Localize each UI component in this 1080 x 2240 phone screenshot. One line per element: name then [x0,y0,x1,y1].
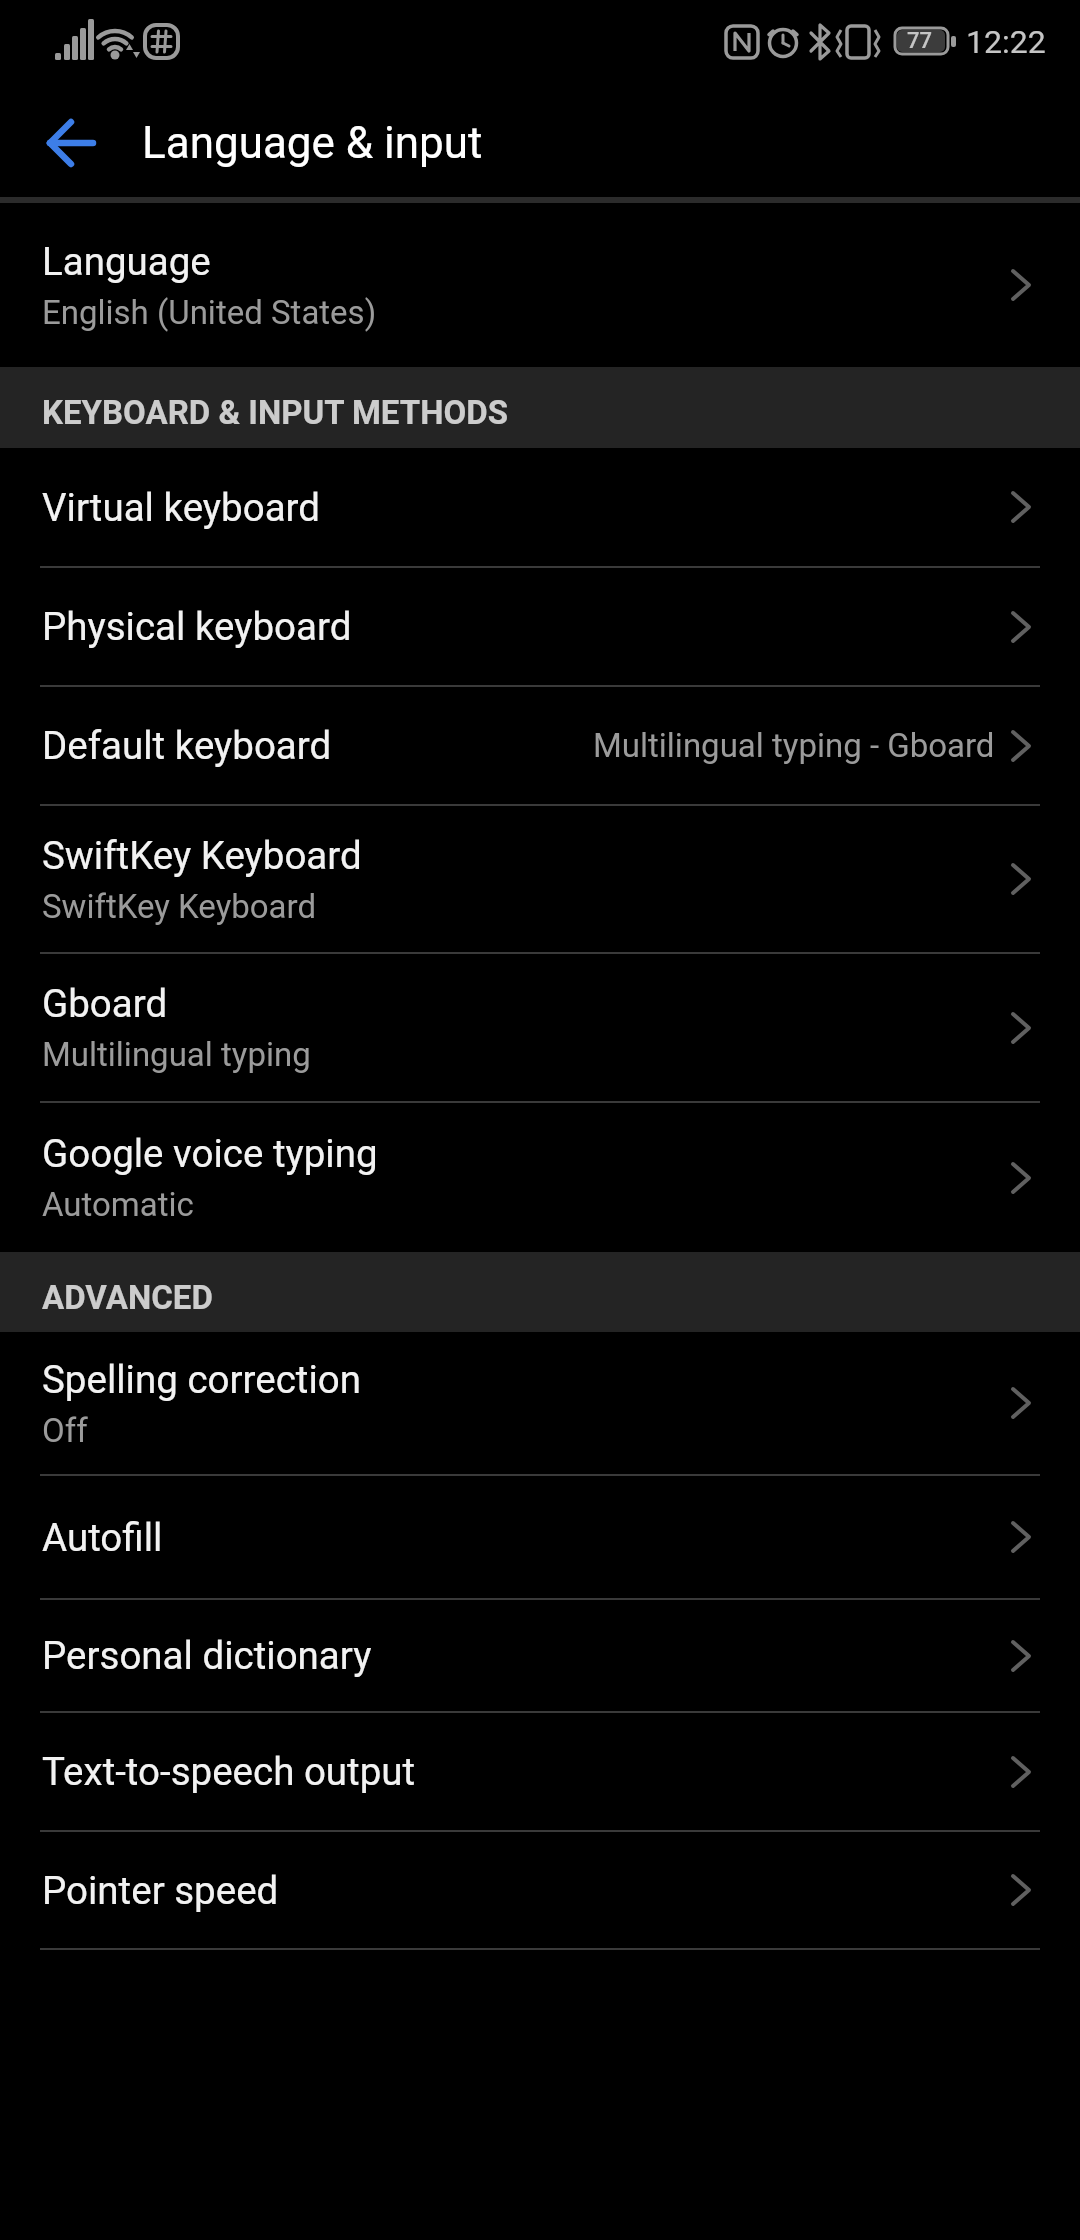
button[interactable]: Pointer speed [0,1832,1080,1948]
staticText: ADVANCED [42,1278,213,1317]
button[interactable] [31,103,111,183]
button[interactable]: Text-to-speech output [0,1713,1080,1830]
button[interactable]: Default keyboard [0,687,1080,804]
button[interactable]: Google voice typing [0,1103,1080,1252]
staticText: KEYBOARD & INPUT METHODS [42,393,508,432]
staticText: SwiftKey Keyboard [42,833,362,878]
button[interactable]: Language [0,203,1080,367]
staticText: Multilingual typing - Gboard [593,726,995,765]
staticText: Multilingual typing [42,1035,311,1074]
staticText: Personal dictionary [42,1633,372,1678]
staticText: Spelling correction [42,1357,361,1402]
staticText: SwiftKey Keyboard [42,887,317,926]
staticText: Virtual keyboard [42,485,320,530]
staticText: Text-to-speech output [42,1749,416,1794]
staticText: Gboard [42,981,168,1026]
staticText: Language [42,239,211,284]
button[interactable]: Spelling correction [0,1332,1080,1474]
staticText: 77 [907,28,933,54]
staticText: Off [42,1411,88,1450]
button[interactable]: Personal dictionary [0,1600,1080,1711]
staticText: Physical keyboard [42,604,352,649]
button[interactable]: SwiftKey Keyboard [0,806,1080,952]
staticText: Default keyboard [42,723,332,768]
staticText: Language & input [142,117,483,169]
staticText: Google voice typing [42,1131,378,1176]
button[interactable]: Gboard [0,954,1080,1101]
button[interactable]: Virtual keyboard [0,448,1080,566]
staticText: 12:22 [966,23,1046,61]
button[interactable]: Autofill [0,1476,1080,1598]
staticText: English (United States) [42,293,377,332]
staticText: Autofill [42,1515,163,1560]
button[interactable]: Physical keyboard [0,568,1080,685]
staticText: Pointer speed [42,1868,279,1913]
staticText: Automatic [42,1185,194,1224]
